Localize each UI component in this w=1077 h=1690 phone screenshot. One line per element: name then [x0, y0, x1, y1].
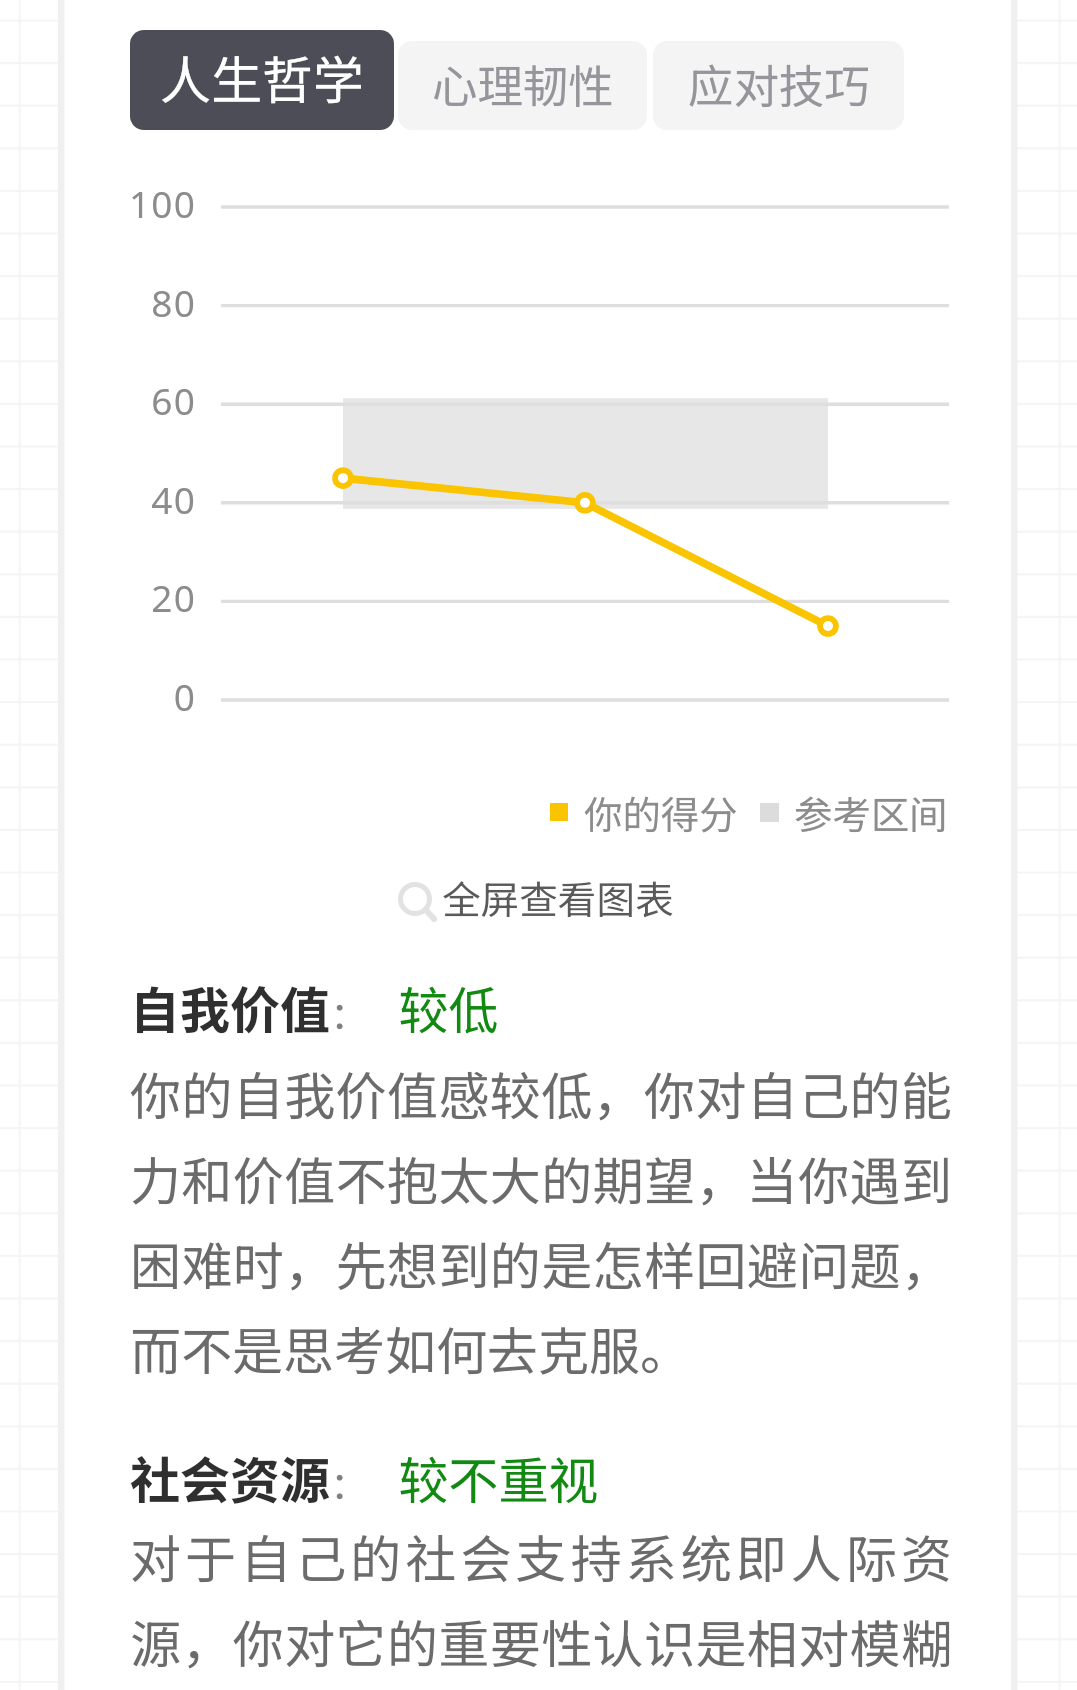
staticText: 全屏查看图表	[442, 869, 674, 925]
staticText: 参考区间	[794, 784, 948, 840]
staticText: 对于自己的社会支持系统即人际资源，你对它的重要性认识是相对模糊的，因此不太重视社…	[130, 1519, 952, 1690]
staticText: 人生哲学	[160, 40, 365, 114]
button[interactable]: 全屏查看图表	[387, 863, 680, 931]
staticText: 60	[60, 375, 196, 425]
staticText: 40	[60, 474, 196, 524]
staticText: 你的自我价值感较低，你对自己的能力和价值不抱太大的期望，当你遇到困难时，先想到的…	[130, 1056, 952, 1385]
staticText: 应对技巧	[688, 50, 870, 116]
other: 全屏查看图表	[393, 877, 433, 917]
button[interactable]: 应对技巧	[653, 41, 904, 130]
staticText: 80	[60, 277, 196, 327]
staticText: 100	[60, 178, 196, 228]
staticText: 20	[60, 572, 196, 622]
staticText: 社会资源： 较不重视	[130, 1441, 599, 1513]
button[interactable]: 人生哲学	[130, 30, 394, 130]
staticText: 心理韧性	[432, 50, 614, 116]
staticText: 自我价值： 较低	[130, 971, 499, 1043]
staticText: 你的得分	[584, 784, 738, 840]
button[interactable]: 心理韧性	[398, 41, 647, 130]
staticText: 0	[60, 671, 196, 721]
